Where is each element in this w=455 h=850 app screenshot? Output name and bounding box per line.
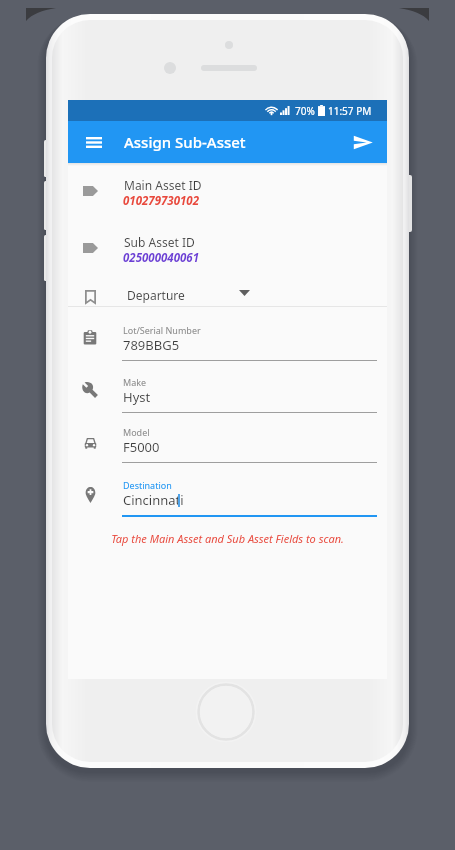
- staticText: Cincinnati: [123, 491, 184, 509]
- staticText: Hyst: [123, 388, 151, 406]
- staticText: Model: [123, 426, 150, 438]
- button[interactable]: Departure: [68, 278, 387, 308]
- button[interactable]: Make: [68, 368, 387, 414]
- staticText: Sub Asset ID: [124, 234, 195, 250]
- button[interactable]: Model: [68, 418, 387, 464]
- staticText: 70%: [295, 104, 315, 118]
- staticText: Tap the Main Asset and Sub Asset Fields …: [68, 531, 387, 546]
- staticText: Make: [123, 376, 147, 388]
- staticText: Departure: [127, 287, 185, 303]
- button[interactable]: Lot/Serial Number: [68, 316, 387, 362]
- staticText: F5000: [123, 438, 160, 456]
- staticText: Assign Sub-Asset: [124, 132, 246, 152]
- staticText: Lot/Serial Number: [123, 324, 201, 336]
- staticText: Destination: [123, 479, 172, 491]
- button[interactable]: Open navigation menu: [74, 121, 114, 163]
- staticText: 010279730102: [123, 193, 200, 209]
- button[interactable]: Send: [341, 121, 385, 163]
- staticText: Main Asset ID: [124, 177, 202, 193]
- staticText: 11:57 PM: [328, 104, 372, 118]
- button[interactable]: Sub Asset ID field, tap to scan: [68, 220, 387, 276]
- button[interactable]: Main Asset ID field, tap to scan: [68, 163, 387, 219]
- staticText: 025000040061: [123, 250, 200, 266]
- staticText: 789BBG5: [123, 336, 180, 354]
- button[interactable]: Destination: [68, 471, 387, 517]
